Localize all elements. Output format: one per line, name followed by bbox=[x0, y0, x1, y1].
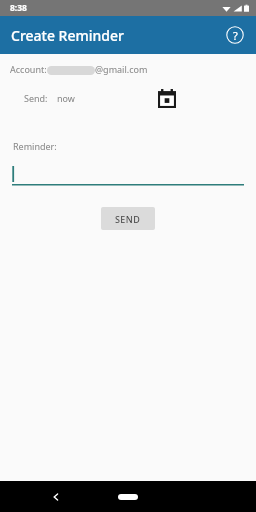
staticText: Create Reminder bbox=[11, 26, 124, 45]
staticText: Account: bbox=[10, 63, 47, 75]
button[interactable]: Pick date bbox=[155, 86, 179, 110]
button[interactable] bbox=[12, 164, 244, 186]
staticText: ? bbox=[233, 28, 238, 43]
staticText: SEND bbox=[115, 213, 141, 225]
button[interactable]: Back bbox=[44, 485, 68, 509]
staticText: 8:38 bbox=[10, 2, 27, 14]
staticText: now bbox=[57, 92, 75, 104]
staticText: Send: bbox=[24, 92, 48, 104]
staticText: @gmail.com bbox=[95, 63, 148, 75]
staticText: Reminder: bbox=[13, 140, 57, 152]
button[interactable]: SEND bbox=[101, 207, 155, 230]
button[interactable]: Home bbox=[111, 487, 145, 507]
button[interactable]: Help bbox=[224, 24, 246, 46]
